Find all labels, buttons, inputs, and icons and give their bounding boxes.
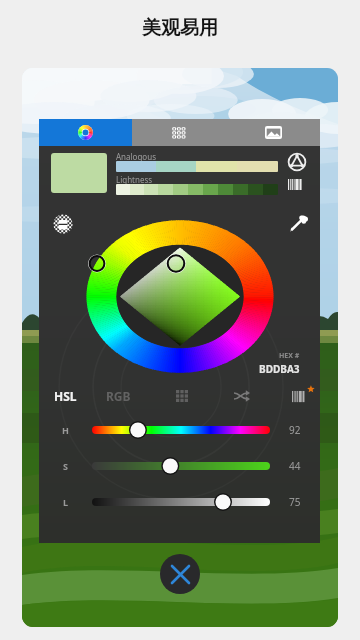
- staticText: RGB: [106, 388, 131, 404]
- staticText: HSL: [54, 388, 77, 404]
- staticText: 44: [289, 459, 301, 473]
- staticText: 92: [289, 423, 301, 437]
- button[interactable]: HSL: [48, 382, 83, 410]
- staticText: HEX #: [279, 351, 300, 361]
- button[interactable]: [92, 448, 270, 484]
- staticText: H: [62, 424, 69, 436]
- staticText: 75: [289, 495, 301, 509]
- button[interactable]: [116, 184, 278, 195]
- button[interactable]: Image: [226, 119, 320, 146]
- button[interactable]: Shades: [288, 179, 306, 190]
- staticText: BDDBA3: [259, 362, 300, 376]
- button[interactable]: [92, 412, 270, 448]
- other: Palettes: [172, 127, 186, 139]
- button[interactable]: Palettes: [132, 119, 226, 146]
- button[interactable]: Transparency: [52, 213, 74, 235]
- button[interactable]: [51, 153, 107, 193]
- staticText: S: [63, 460, 68, 472]
- button[interactable]: Grid view: [172, 386, 192, 406]
- other: Image: [265, 126, 282, 139]
- button[interactable]: [116, 161, 278, 172]
- button[interactable]: Color wheel: [39, 119, 132, 146]
- button[interactable]: RGB: [100, 382, 137, 410]
- button[interactable]: [92, 484, 270, 520]
- button[interactable]: Eyedropper: [289, 213, 309, 233]
- button[interactable]: Harmony mode: [287, 152, 307, 172]
- staticText: L: [63, 496, 69, 508]
- staticText: Lightness: [116, 174, 153, 185]
- button[interactable]: Shuffle: [232, 386, 252, 406]
- staticText: 美观易用: [0, 16, 360, 40]
- other: Color wheel: [78, 125, 93, 140]
- staticText: Analogous: [116, 151, 156, 162]
- button[interactable]: Close: [160, 554, 200, 594]
- button[interactable]: Shades: [292, 387, 314, 405]
